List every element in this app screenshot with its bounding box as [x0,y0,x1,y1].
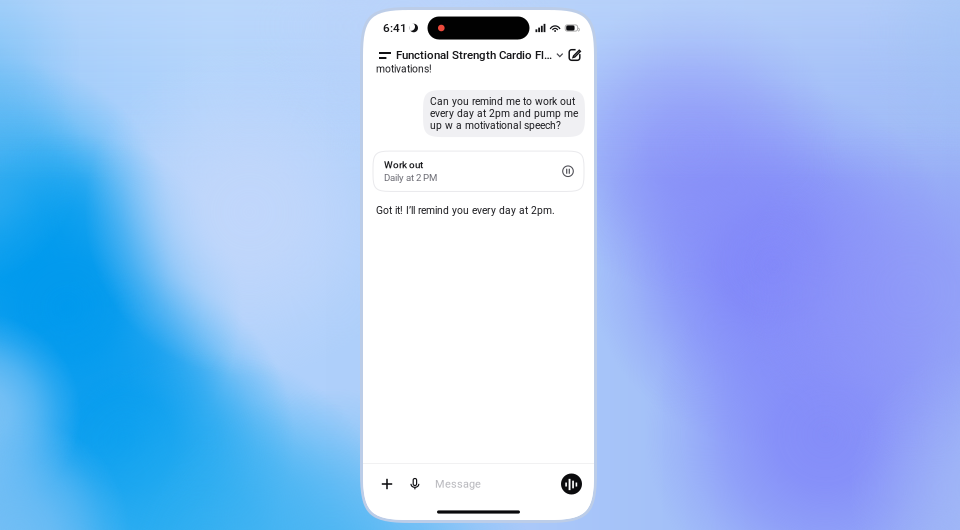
button[interactable]: Pause reminder [562,165,574,177]
button[interactable]: Functional Strength Cardio Fle… [396,48,564,62]
staticText: Got it! I’ll remind you every day at 2pm… [376,204,555,216]
staticText: Work out [384,159,423,171]
staticText: 6:41 [383,21,407,35]
staticText: Functional Strength Cardio Fle… [396,48,552,62]
button[interactable]: Dictate [407,472,423,496]
button[interactable]: Add attachment [377,472,397,496]
button[interactable]: New chat [564,44,586,66]
staticText: Can you remind me to work out every day … [430,95,578,132]
staticText: Message [435,478,481,490]
staticText: Daily at 2 PM [384,172,437,183]
button[interactable]: Voice mode [561,473,582,494]
staticText: motivations! [376,63,432,75]
button[interactable]: Open sidebar [374,44,396,66]
